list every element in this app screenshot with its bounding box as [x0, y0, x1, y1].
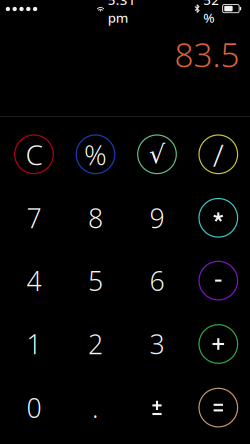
staticText: 4: [26, 263, 41, 298]
button[interactable]: 5: [65, 249, 126, 312]
button[interactable]: 3: [126, 312, 188, 376]
button[interactable]: Square root: [126, 123, 188, 186]
staticText: 6: [149, 263, 164, 298]
staticText: √: [149, 140, 165, 169]
button[interactable]: Subtract: [188, 249, 249, 312]
staticText: 3: [149, 326, 164, 362]
staticText: 0: [26, 390, 41, 425]
staticText: 9: [149, 200, 164, 235]
button[interactable]: 8: [65, 186, 126, 249]
staticText: C: [25, 136, 42, 173]
staticText: 8: [88, 200, 103, 235]
button[interactable]: 4: [3, 249, 65, 312]
button[interactable]: Multiply: [188, 186, 249, 249]
staticText: 83.5: [174, 32, 239, 76]
button[interactable]: Clear: [3, 123, 65, 186]
button[interactable]: Plus minus: [126, 376, 188, 439]
button[interactable]: .: [65, 376, 126, 439]
button[interactable]: 9: [126, 186, 188, 249]
button[interactable]: Add: [188, 312, 249, 376]
button[interactable]: Percent: [65, 123, 126, 186]
button[interactable]: 7: [3, 186, 65, 249]
staticText: 5:31 pm: [108, 0, 136, 26]
staticText: 7: [26, 200, 41, 235]
staticText: .: [92, 390, 99, 425]
button[interactable]: 1: [3, 312, 65, 376]
button[interactable]: Equals: [188, 376, 249, 439]
staticText: /: [213, 133, 224, 176]
button[interactable]: 2: [65, 312, 126, 376]
button[interactable]: 0: [3, 376, 65, 439]
staticText: 1: [26, 326, 41, 362]
button[interactable]: 6: [126, 249, 188, 312]
button[interactable]: Divide: [188, 123, 249, 186]
staticText: %: [84, 136, 107, 173]
staticText: 52%: [203, 0, 219, 26]
staticText: 5: [88, 263, 103, 298]
staticText: 2: [88, 326, 103, 362]
